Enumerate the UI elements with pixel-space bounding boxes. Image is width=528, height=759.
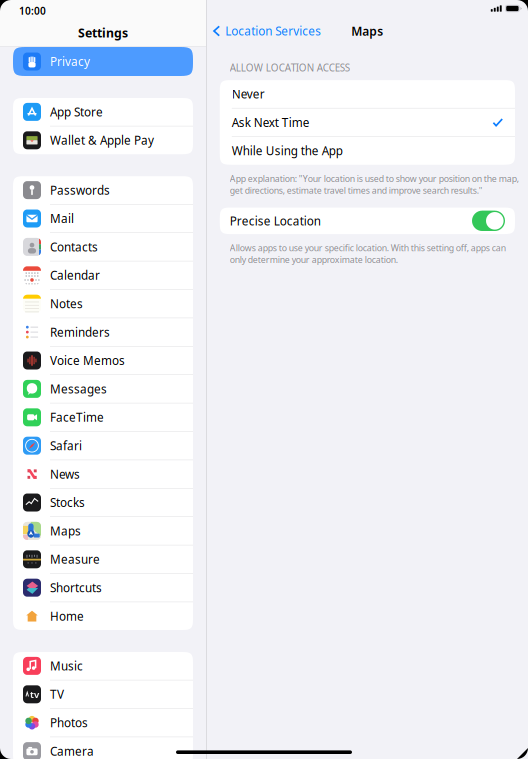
button[interactable]: Privacy [13, 47, 193, 76]
staticText: TV [50, 686, 64, 702]
staticText: Notes [50, 296, 83, 311]
button[interactable]: Reminders [13, 318, 193, 346]
staticText: App Store [50, 104, 103, 120]
staticText: Measure [50, 551, 100, 567]
staticText: 10:00 [19, 4, 46, 17]
staticText: News [50, 466, 80, 482]
staticText: Calendar [50, 267, 100, 283]
button[interactable]: Mail [13, 205, 193, 232]
button[interactable]: Wallet & Apple Pay [13, 126, 193, 154]
staticText: Stocks [50, 495, 85, 510]
button[interactable]: Notes [13, 290, 193, 318]
button[interactable]: tv [13, 680, 193, 708]
staticText: App explanation: "Your location is used … [230, 173, 519, 196]
button[interactable]: FaceTime [13, 403, 193, 431]
staticText: Location Services [225, 23, 321, 39]
button[interactable]: Passwords [13, 176, 193, 204]
staticText: Safari [50, 438, 82, 453]
button[interactable]: Maps [13, 517, 193, 545]
button[interactable]: App Store [13, 98, 193, 126]
staticText: Maps [351, 23, 383, 39]
staticText: Messages [50, 381, 107, 397]
button[interactable]: Location Services [213, 19, 321, 43]
button[interactable]: Calendar [13, 261, 193, 289]
button[interactable]: Precise Location [220, 208, 515, 234]
staticText: Mail [50, 211, 74, 226]
button[interactable]: Ask Next Time [220, 108, 515, 136]
staticText: Wallet & Apple Pay [50, 132, 154, 148]
button[interactable]: Photos [13, 709, 193, 737]
button[interactable]: Never [220, 80, 515, 108]
staticText: Passwords [50, 182, 110, 198]
staticText: tv [30, 688, 39, 701]
staticText: Ask Next Time [232, 115, 310, 130]
button[interactable]: Contacts [13, 233, 193, 261]
staticText: Music [50, 658, 83, 674]
staticText: Privacy [50, 54, 90, 69]
button[interactable]: Voice Memos [13, 347, 193, 374]
button[interactable]: Messages [13, 375, 193, 403]
button[interactable]: Home [13, 602, 193, 630]
button[interactable]: Safari [13, 432, 193, 460]
staticText: ALLOW LOCATION ACCESS [230, 61, 350, 74]
staticText: Camera [50, 743, 94, 759]
staticText: FaceTime [50, 409, 104, 425]
staticText: Home [50, 608, 84, 624]
staticText: Voice Memos [50, 353, 125, 368]
button[interactable]: Measure [13, 545, 193, 573]
staticText: Settings [78, 25, 128, 41]
staticText: Allows apps to use your specific locatio… [230, 242, 506, 265]
staticText: Maps [50, 523, 81, 539]
button[interactable]: While Using the App [220, 137, 515, 165]
button[interactable]: Music [13, 652, 193, 680]
staticText: Reminders [50, 324, 110, 340]
staticText: Shortcuts [50, 580, 102, 595]
button[interactable]: Stocks [13, 489, 193, 516]
staticText: Precise Location [230, 213, 321, 229]
button[interactable]: News [13, 460, 193, 488]
button[interactable]: Camera [13, 737, 193, 759]
staticText: Never [232, 86, 265, 102]
staticText: While Using the App [232, 143, 343, 159]
staticText: Contacts [50, 239, 98, 255]
button[interactable]: Shortcuts [13, 574, 193, 602]
staticText: Photos [50, 715, 88, 730]
